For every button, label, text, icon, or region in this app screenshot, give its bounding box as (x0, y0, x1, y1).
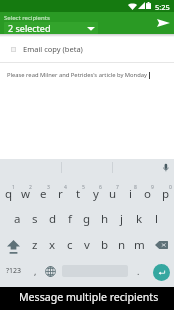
staticText: 4 (64, 184, 67, 191)
staticText: , (34, 265, 37, 277)
staticText: 1 (12, 184, 15, 191)
staticText: k (136, 211, 143, 227)
staticText: 5:25 (155, 2, 170, 12)
button[interactable]: n (113, 232, 130, 258)
button[interactable]: 9 (139, 179, 156, 205)
staticText: f (68, 211, 72, 227)
button[interactable]: s (26, 206, 43, 232)
button[interactable]: a (9, 206, 26, 232)
button[interactable]: b (96, 232, 113, 258)
button[interactable]: 3 (35, 179, 52, 205)
staticText: 7 (116, 184, 119, 191)
staticText: Email copy (beta) (23, 44, 83, 54)
button[interactable]: Shift (0, 234, 26, 260)
staticText: i (129, 186, 132, 202)
staticText: Select recipients (4, 14, 50, 22)
button[interactable]: x (44, 232, 61, 258)
button[interactable]: f (61, 206, 78, 232)
button[interactable]: Voice input (158, 159, 174, 175)
staticText: . (137, 265, 140, 277)
staticText: w (21, 186, 31, 202)
staticText: d (49, 211, 57, 227)
staticText: 2 selected (8, 22, 51, 34)
staticText: b (101, 237, 109, 253)
button[interactable]: g (78, 206, 95, 232)
staticText: h (101, 211, 109, 227)
staticText: y (93, 186, 99, 202)
staticText: q (5, 186, 13, 202)
button[interactable]: . (131, 258, 145, 284)
button[interactable]: 8 (122, 179, 139, 205)
button[interactable]: k (131, 206, 148, 232)
button[interactable]: Send (152, 12, 174, 34)
staticText: n (118, 237, 126, 253)
button[interactable]: , (27, 258, 43, 284)
button[interactable]: Email copy checkbox (11, 47, 16, 52)
button[interactable]: l (148, 206, 165, 232)
staticText: 6 (99, 184, 102, 191)
staticText: 3 (47, 184, 50, 191)
staticText: Please read Milner and Petrides's articl… (7, 71, 147, 79)
staticText: z (32, 237, 38, 253)
staticText: l (155, 211, 158, 227)
button[interactable]: ?123 (0, 258, 27, 284)
staticText: m (134, 237, 145, 253)
button[interactable]: v (78, 232, 95, 258)
staticText: 9 (151, 184, 154, 191)
staticText: c (67, 237, 73, 253)
button[interactable]: Change language (43, 258, 58, 284)
staticText: 8 (134, 184, 137, 191)
staticText: v (84, 237, 90, 253)
staticText: 0 (169, 184, 172, 191)
button[interactable]: 2 (17, 179, 34, 205)
staticText: 2 (29, 184, 32, 191)
button[interactable]: Enter (153, 264, 170, 281)
button[interactable]: d (44, 206, 61, 232)
staticText: u (109, 186, 117, 202)
button[interactable]: 0 (157, 179, 174, 205)
staticText: t (76, 186, 81, 202)
staticText: Message multiple recipients (19, 290, 159, 304)
staticText: o (144, 186, 151, 202)
staticText: ?123 (6, 266, 22, 276)
staticText: x (49, 237, 56, 253)
button[interactable]: z (26, 232, 43, 258)
button[interactable]: j (113, 206, 130, 232)
button[interactable]: 4 (52, 179, 69, 205)
button[interactable]: m (131, 232, 148, 258)
staticText: s (32, 211, 38, 227)
staticText: j (120, 211, 123, 227)
button[interactable]: 1 (0, 179, 17, 205)
button[interactable]: 6 (87, 179, 104, 205)
staticText: a (14, 211, 21, 227)
staticText: r (58, 186, 63, 202)
button[interactable]: h (96, 206, 113, 232)
staticText: g (83, 211, 91, 227)
staticText: e (40, 186, 47, 202)
staticText: p (162, 186, 170, 202)
button[interactable]: c (61, 232, 78, 258)
button[interactable]: 7 (104, 179, 121, 205)
button[interactable]: Backspace (148, 232, 174, 258)
button[interactable]: 2 selected (4, 22, 98, 34)
button[interactable]: 5 (70, 179, 87, 205)
staticText: 5 (82, 184, 85, 191)
